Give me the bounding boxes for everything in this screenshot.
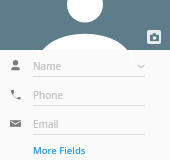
staticText: Name bbox=[33, 59, 137, 73]
button[interactable]: Name bbox=[0, 59, 170, 77]
button[interactable]: Change photo bbox=[147, 30, 161, 44]
staticText: Phone bbox=[33, 88, 145, 102]
staticText: Email bbox=[33, 117, 145, 131]
button[interactable]: More Fields bbox=[33, 143, 86, 158]
staticText: More Fields bbox=[33, 144, 86, 157]
button[interactable]: Email bbox=[0, 117, 170, 135]
button[interactable]: Phone bbox=[0, 88, 170, 106]
